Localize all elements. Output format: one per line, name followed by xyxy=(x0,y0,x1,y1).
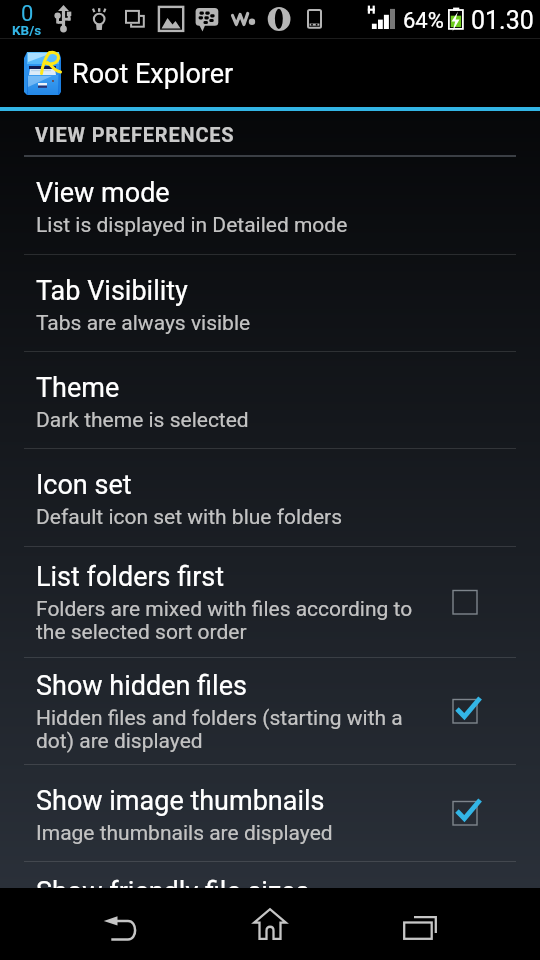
staticText: Dark theme is selected xyxy=(36,408,456,433)
button[interactable]: List folders first xyxy=(0,547,540,658)
staticText: Default icon set with blue folders xyxy=(36,505,456,530)
button[interactable]: Recent apps xyxy=(345,888,495,960)
staticText: Tab Visibility xyxy=(36,275,188,307)
button[interactable]: Show hidden files xyxy=(0,658,540,765)
button[interactable]: Show hidden files xyxy=(441,688,489,736)
staticText: Theme xyxy=(36,372,120,404)
staticText: Show image thumbnails xyxy=(36,785,325,817)
staticText: Icon set xyxy=(36,469,132,501)
staticText: Folders are mixed with files according t… xyxy=(36,597,456,644)
button[interactable]: Show image thumbnails xyxy=(0,765,540,862)
button[interactable]: Tab Visibility xyxy=(0,255,540,352)
button[interactable]: Show friendly file sizes xyxy=(0,862,540,888)
staticText: Show friendly file sizes xyxy=(36,876,310,902)
staticText: Root Explorer xyxy=(72,58,234,90)
button[interactable]: Root Explorer xyxy=(0,38,540,110)
staticText: VIEW PREFERENCES xyxy=(35,123,235,146)
staticText: Image thumbnails are displayed xyxy=(36,821,456,846)
button[interactable]: Back xyxy=(45,888,195,960)
button[interactable]: Icon set xyxy=(0,449,540,547)
staticText: 01.30 xyxy=(471,6,534,35)
staticText: Show hidden files xyxy=(36,670,247,702)
staticText: 0 xyxy=(21,1,34,27)
staticText: Tabs are always visible xyxy=(36,311,456,336)
button[interactable]: View mode xyxy=(0,157,540,255)
button[interactable]: Show image thumbnails xyxy=(441,790,489,838)
staticText: 64% xyxy=(403,8,444,34)
button[interactable]: List folders first xyxy=(441,579,489,627)
staticText: Hidden files and folders (starting with … xyxy=(36,706,456,753)
staticText: View mode xyxy=(36,177,170,209)
staticText: List folders first xyxy=(36,561,225,593)
staticText: List is displayed in Detailed mode xyxy=(36,213,456,238)
staticText: KB/s xyxy=(12,22,42,38)
button[interactable]: Theme xyxy=(0,352,540,449)
button[interactable]: Home xyxy=(195,888,345,960)
